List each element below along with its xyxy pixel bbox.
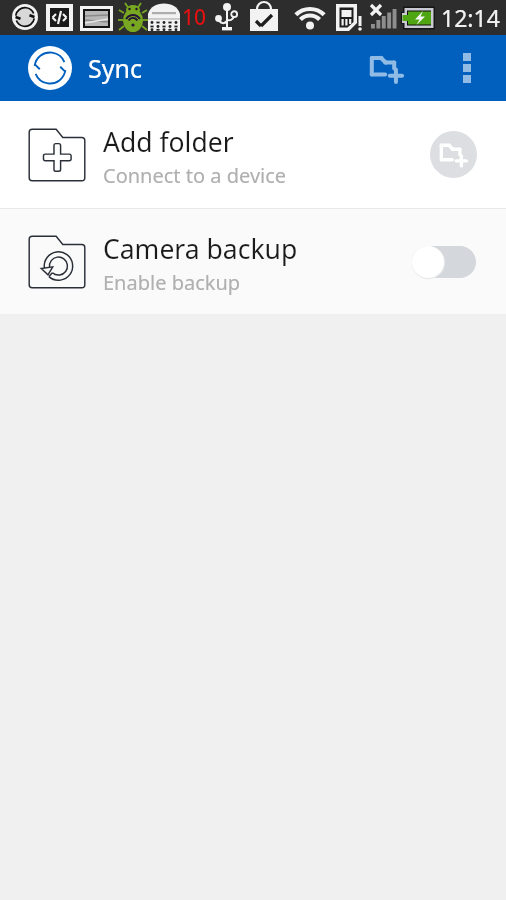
staticText: Sync [88,51,142,85]
staticText: Camera backup [103,231,298,267]
button[interactable]: Camera backup [0,209,506,314]
button[interactable]: Add folder [353,35,419,101]
staticText: Enable backup [103,269,241,296]
staticText: Connect to a device [103,162,287,189]
button[interactable]: Enable backup [412,238,476,286]
button[interactable]: Add folder [430,131,477,178]
button[interactable]: More options [434,35,500,101]
staticText: 12:14 [441,2,500,33]
button[interactable]: Add folder [0,101,506,208]
staticText: 10 [182,3,207,32]
staticText: Add folder [103,124,234,160]
